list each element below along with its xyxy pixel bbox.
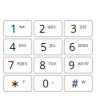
staticText: 8 <box>39 58 45 72</box>
button[interactable]: 6 <box>64 38 93 55</box>
staticText: + <box>51 79 53 85</box>
staticText: 6 <box>69 40 75 54</box>
staticText: 7 <box>8 58 14 72</box>
staticText: 0 <box>42 76 48 91</box>
staticText: 2 <box>39 21 45 36</box>
button[interactable]: # <box>64 75 93 92</box>
staticText: JKL <box>49 43 55 48</box>
staticText: # <box>71 76 78 91</box>
button[interactable]: 4 <box>3 38 32 55</box>
button[interactable]: 9 <box>64 57 93 74</box>
staticText: GHI <box>19 43 26 48</box>
button[interactable]: 7 <box>3 57 32 74</box>
button[interactable]: 3 <box>64 20 93 37</box>
staticText: 9 <box>68 58 74 72</box>
staticText: PQRS <box>17 61 27 66</box>
staticText: 3 <box>70 21 76 36</box>
staticText: ABC <box>48 24 57 30</box>
staticText: MNO <box>78 43 88 48</box>
staticText: 5 <box>40 40 46 54</box>
button[interactable]: ∗ <box>3 75 32 92</box>
staticText: TUV <box>48 61 56 66</box>
button[interactable]: 8 <box>33 57 63 74</box>
staticText: WXYZ <box>77 61 88 66</box>
staticText: W <box>81 79 85 85</box>
button[interactable]: 1 <box>3 20 32 37</box>
staticText: DEF <box>79 24 86 30</box>
button[interactable]: 0 <box>33 75 63 92</box>
staticText: 1 <box>11 21 17 36</box>
staticText: ∗ <box>11 77 20 89</box>
button[interactable]: 2 <box>33 20 63 37</box>
button[interactable]: 5 <box>33 38 63 55</box>
staticText: P <box>23 79 25 85</box>
staticText: 4 <box>10 40 16 54</box>
